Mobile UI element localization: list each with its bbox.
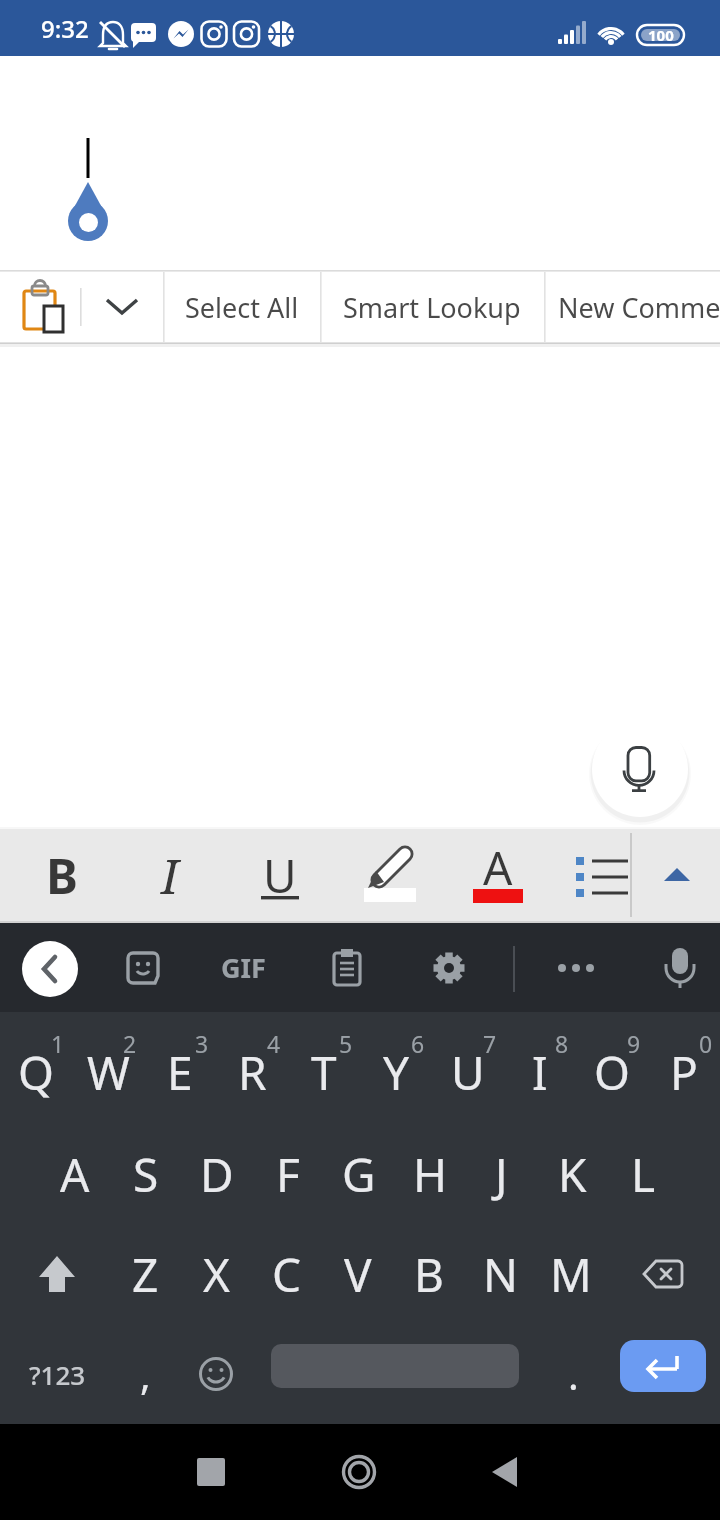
button[interactable]: B [393, 1228, 465, 1320]
staticText: Z [132, 1243, 159, 1306]
button[interactable]: GIF [209, 923, 277, 1012]
staticText: A [483, 836, 513, 899]
staticText: O [594, 1041, 630, 1104]
staticText: Select All [185, 289, 299, 326]
button[interactable]: X [180, 1228, 252, 1320]
button[interactable]: Z [109, 1228, 181, 1320]
staticText: B [414, 1243, 444, 1306]
staticText: Y [383, 1041, 410, 1104]
button[interactable]: I [504, 1026, 576, 1118]
staticText: 8 [555, 1028, 569, 1054]
button[interactable] [646, 923, 714, 1012]
button[interactable]: Smart Lookup [320, 270, 544, 344]
button[interactable]: J [465, 1128, 537, 1220]
button[interactable]: B [26, 827, 98, 923]
staticText: ?123 [29, 1357, 86, 1392]
button[interactable]: U [432, 1026, 504, 1118]
staticText: H [413, 1143, 448, 1206]
button[interactable] [183, 1444, 239, 1500]
staticText: N [483, 1243, 518, 1306]
staticText: 9:32 [41, 12, 89, 45]
staticText: Q [18, 1041, 54, 1104]
button[interactable]: Select All [163, 270, 320, 344]
staticText: L [631, 1143, 656, 1206]
staticText: . [568, 1347, 579, 1401]
staticText: 1 [51, 1028, 65, 1054]
button[interactable] [352, 827, 428, 923]
button[interactable]: G [323, 1128, 395, 1220]
staticText: U [263, 844, 297, 907]
button[interactable] [620, 1228, 706, 1320]
staticText: C [272, 1243, 302, 1306]
staticText: New Comment [558, 289, 720, 326]
button[interactable]: P [648, 1026, 720, 1118]
staticText: B [46, 843, 78, 908]
button[interactable]: A [39, 1128, 111, 1220]
button[interactable] [180, 1328, 252, 1420]
button[interactable]: E [144, 1026, 216, 1118]
staticText: M [550, 1243, 592, 1306]
staticText: Smart Lookup [343, 289, 521, 326]
button[interactable] [571, 827, 629, 923]
button[interactable]: S [110, 1128, 182, 1220]
staticText: , [140, 1347, 151, 1401]
button[interactable]: C [251, 1228, 323, 1320]
button[interactable]: T [288, 1026, 360, 1118]
button[interactable]: ?123 [14, 1328, 100, 1420]
button[interactable] [109, 923, 177, 1012]
staticText: S [133, 1143, 159, 1206]
button[interactable]: U [244, 827, 316, 923]
button[interactable]: V [322, 1228, 394, 1320]
button[interactable]: D [181, 1128, 253, 1220]
button[interactable]: I [134, 827, 206, 923]
staticText: X [203, 1243, 230, 1306]
button[interactable] [0, 270, 80, 344]
button[interactable] [543, 923, 611, 1012]
button[interactable]: H [394, 1128, 466, 1220]
staticText: R [238, 1041, 267, 1104]
staticText: 9 [627, 1028, 641, 1054]
staticText: 100 [648, 25, 674, 45]
button[interactable] [313, 923, 381, 1012]
button[interactable]: New Comment [545, 270, 720, 344]
staticText: U [451, 1041, 485, 1104]
button[interactable]: K [536, 1128, 608, 1220]
staticText: 2 [123, 1028, 137, 1054]
button[interactable] [477, 1444, 533, 1500]
staticText: GIF [221, 949, 266, 986]
button[interactable]: O [576, 1026, 648, 1118]
button[interactable] [22, 941, 78, 997]
staticText: 6 [411, 1028, 425, 1054]
button[interactable] [81, 270, 163, 344]
staticText: D [200, 1143, 234, 1206]
staticText: 4 [267, 1028, 281, 1054]
button[interactable] [620, 1340, 706, 1392]
staticText: J [495, 1143, 508, 1206]
button[interactable]: R [216, 1026, 288, 1118]
staticText: E [167, 1041, 193, 1104]
button[interactable]: L [607, 1128, 679, 1220]
staticText: 3 [195, 1028, 209, 1054]
staticText: P [670, 1041, 698, 1104]
button[interactable] [415, 923, 483, 1012]
staticText: I [161, 843, 179, 908]
staticText: W [87, 1041, 130, 1104]
button[interactable]: . [537, 1328, 609, 1420]
button[interactable] [633, 827, 720, 923]
button[interactable] [14, 1228, 100, 1320]
staticText: T [311, 1041, 337, 1104]
button[interactable]: , [109, 1328, 181, 1420]
button[interactable]: Y [360, 1026, 432, 1118]
button[interactable]: W [72, 1026, 144, 1118]
staticText: 7 [483, 1028, 497, 1054]
button[interactable]: N [464, 1228, 536, 1320]
button[interactable] [592, 721, 688, 817]
button[interactable]: Q [0, 1026, 72, 1118]
button[interactable]: A [462, 827, 534, 923]
button[interactable] [331, 1444, 387, 1500]
staticText: A [60, 1143, 90, 1206]
staticText: G [342, 1143, 376, 1206]
button[interactable] [271, 1344, 519, 1388]
button[interactable]: F [252, 1128, 324, 1220]
button[interactable]: M [535, 1228, 607, 1320]
